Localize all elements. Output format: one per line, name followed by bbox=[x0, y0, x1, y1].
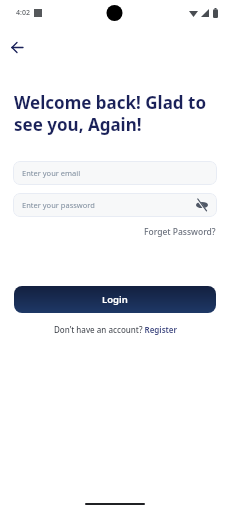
staticText: Enter your email bbox=[22, 168, 81, 178]
button[interactable]: Don’t have an account? Register bbox=[0, 324, 230, 335]
staticText: Enter your password bbox=[22, 200, 95, 210]
staticText: Don’t have an account? Register bbox=[54, 324, 177, 335]
staticText: 4:02 bbox=[16, 8, 30, 18]
button[interactable] bbox=[5, 35, 29, 59]
button[interactable]: Enter your password bbox=[13, 193, 217, 217]
button[interactable]: Login bbox=[14, 286, 216, 313]
staticText: Forget Password? bbox=[144, 226, 216, 238]
staticText: Login bbox=[102, 293, 128, 306]
staticText: Welcome back! Glad to see you, Again! bbox=[14, 91, 207, 136]
button[interactable]: Enter your email bbox=[13, 161, 217, 185]
button[interactable]: Forget Password? bbox=[144, 226, 216, 238]
